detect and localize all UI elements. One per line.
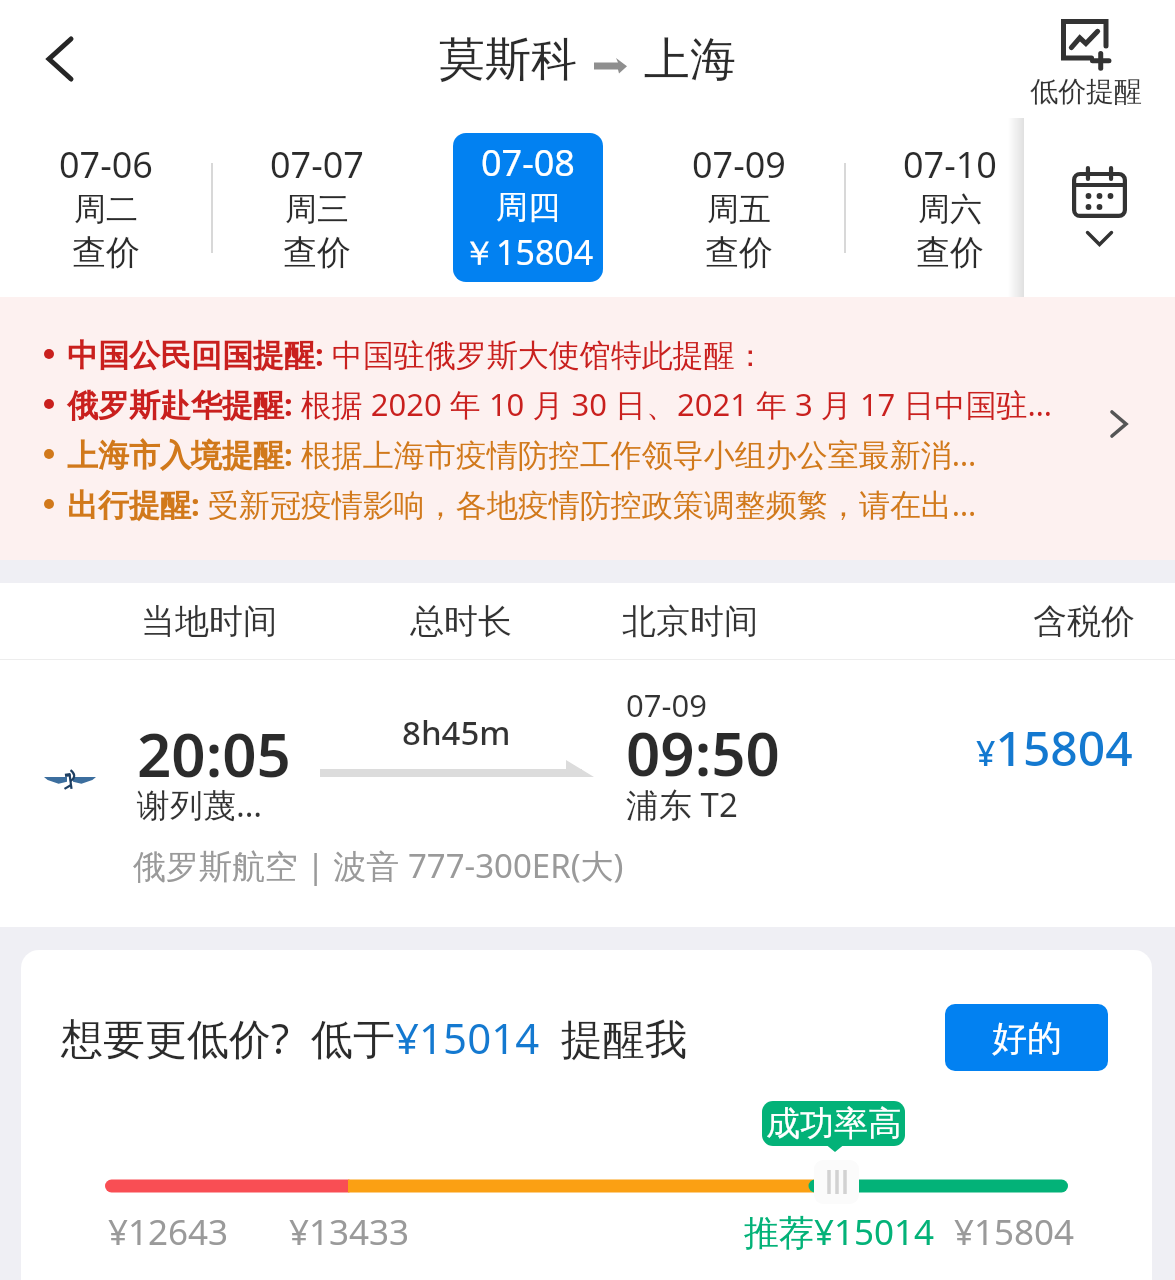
staticText: 周五 <box>707 189 771 229</box>
staticText: 俄罗斯航空 | 波音 777-300ER(大) <box>133 843 624 888</box>
staticText: 07-08 <box>481 138 575 187</box>
staticText: 浦东 T2 <box>626 782 738 827</box>
staticText: 07-10 <box>903 140 997 189</box>
staticText: 07-09 <box>692 140 786 189</box>
staticText: 周三 <box>285 189 349 229</box>
staticText: 周六 <box>918 189 982 229</box>
staticText: 8h45m <box>402 710 511 755</box>
staticText: 周二 <box>74 189 138 229</box>
staticText: 莫斯科 <box>439 31 577 89</box>
staticText: 含税价 <box>1033 600 1135 643</box>
staticText: ¥12643 <box>108 1208 229 1256</box>
button[interactable]: 07-10 <box>875 131 1025 285</box>
staticText: 上海 <box>644 31 736 89</box>
button[interactable]: 07-08 <box>453 133 603 282</box>
button[interactable]: 07-06 <box>31 131 181 285</box>
staticText: 07-07 <box>270 140 364 189</box>
staticText: 中国公民回国提醒: 中国驻俄罗斯大使馆特此提醒： <box>67 333 766 375</box>
button[interactable]: 低价提醒 <box>1019 8 1159 112</box>
staticText: 低价提醒 <box>1030 74 1142 109</box>
button[interactable]: 好的 <box>945 1004 1108 1071</box>
staticText: 查价 <box>72 231 140 274</box>
button[interactable]: 20:05 <box>0 660 1175 927</box>
staticText: 谢列蔑… <box>137 782 263 827</box>
staticText: 查价 <box>283 231 351 274</box>
staticText: 当地时间 <box>141 600 277 643</box>
button[interactable]: 选择日期 <box>1024 118 1175 297</box>
staticText: 09:50 <box>626 712 780 794</box>
button[interactable]: 07-07 <box>242 131 392 285</box>
button[interactable]: 价格滑块 <box>814 1160 859 1204</box>
staticText: 推荐¥15014 <box>744 1208 935 1256</box>
staticText: ¥13433 <box>289 1208 410 1256</box>
staticText: 想要更低价? 低于¥15014 提醒我 <box>61 1009 688 1066</box>
button[interactable]: Back <box>22 21 98 97</box>
staticText: ￥15804 <box>462 229 594 275</box>
staticText: 查价 <box>705 231 773 274</box>
staticText: 07-09 <box>626 684 707 726</box>
button[interactable]: 07-09 <box>664 131 814 285</box>
staticText: ¥15804 <box>954 1208 1075 1256</box>
staticText: 出行提醒: 受新冠疫情影响，各地疫情防控政策调整频繁，请在出… <box>67 483 977 525</box>
staticText: 查价 <box>916 231 984 274</box>
staticText: ¥15804 <box>976 715 1133 780</box>
staticText: 俄罗斯赴华提醒: 根据 2020 年 10 月 30 日、2021 年 3 月 … <box>67 383 1052 425</box>
staticText: 周四 <box>496 187 560 227</box>
staticText: 20:05 <box>137 713 291 795</box>
staticText: 北京时间 <box>622 600 758 643</box>
staticText: 好的 <box>992 1016 1062 1060</box>
staticText: 成功率高 <box>766 1102 902 1145</box>
staticText: 上海市入境提醒: 根据上海市疫情防控工作领导小组办公室最新消… <box>67 433 977 475</box>
staticText: 07-06 <box>59 140 153 189</box>
staticText: 总时长 <box>410 600 512 643</box>
